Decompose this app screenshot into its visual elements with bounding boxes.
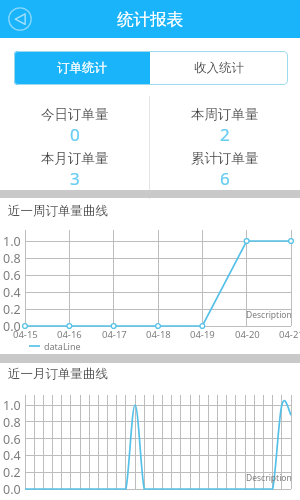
staticText: 04-21 [279, 328, 300, 341]
staticText: 0.4 [3, 447, 21, 464]
staticText: 04-19 [190, 328, 215, 341]
staticText: 2 [220, 123, 230, 146]
staticText: 0.8 [3, 414, 21, 431]
staticText: 04-17 [102, 328, 127, 341]
staticText: Description [246, 472, 292, 484]
staticText: 0.0 [3, 318, 21, 335]
staticText: 今日订单量 [41, 106, 109, 123]
staticText: 3 [70, 167, 80, 190]
staticText: 0.6 [3, 431, 21, 448]
staticText: 累计订单量 [191, 150, 259, 167]
staticText: 本周订单量 [191, 106, 259, 123]
staticText: 0 [70, 123, 80, 146]
staticText: 0.8 [3, 250, 21, 267]
staticText: 本月订单量 [41, 150, 109, 167]
staticText: 0.6 [3, 267, 21, 284]
staticText: 0.4 [3, 284, 21, 301]
staticText: 1.0 [3, 397, 21, 414]
staticText: 1.0 [3, 233, 21, 250]
staticText: 0.2 [3, 301, 21, 318]
staticText: 04-20 [235, 328, 260, 341]
button[interactable]: 收入统计 [150, 51, 288, 85]
staticText: 0.0 [3, 481, 21, 498]
staticText: 统计报表 [117, 9, 183, 30]
button[interactable]: 订单统计 [14, 51, 150, 85]
staticText: 04-15 [13, 328, 38, 341]
staticText: 近一周订单量曲线 [8, 203, 108, 219]
button[interactable]: Back [6, 5, 34, 33]
staticText: 04-18 [146, 328, 171, 341]
staticText: 04-16 [57, 328, 82, 341]
staticText: Description [246, 309, 292, 321]
staticText: 近一月订单量曲线 [8, 366, 108, 382]
staticText: 收入统计 [194, 60, 244, 76]
staticText: 0.2 [3, 464, 21, 481]
staticText: 6 [220, 167, 230, 190]
staticText: dataLine [44, 340, 81, 352]
staticText: 订单统计 [57, 60, 107, 76]
